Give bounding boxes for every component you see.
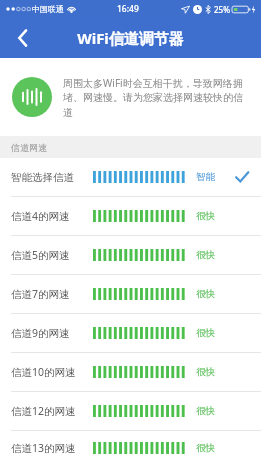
staticText: 很快 xyxy=(196,288,215,300)
button[interactable]: 信道5的网速 xyxy=(0,236,261,275)
staticText: 信道4的网速 xyxy=(11,209,70,223)
button[interactable]: 智能选择信道 xyxy=(0,158,261,197)
staticText: 很快 xyxy=(196,405,215,417)
staticText: 很快 xyxy=(196,442,215,454)
staticText: 智能 xyxy=(196,171,215,183)
staticText: 智能选择信道 xyxy=(11,171,74,184)
staticText: 很快 xyxy=(196,327,215,339)
button[interactable]: 信道9的网速 xyxy=(0,314,261,353)
staticText: 信道13的网速 xyxy=(11,441,76,455)
staticText: 25% xyxy=(214,4,230,15)
button[interactable]: 信道4的网速 xyxy=(0,197,261,236)
staticText: 16:49 xyxy=(117,3,139,15)
staticText: 中国联通 xyxy=(32,4,64,14)
staticText: WiFi信道调节器 xyxy=(77,28,184,48)
button[interactable]: 信道13的网速 xyxy=(0,431,261,464)
staticText: 很快 xyxy=(196,366,215,378)
staticText: 很快 xyxy=(196,210,215,222)
staticText: 信道12的网速 xyxy=(11,404,76,418)
staticText: 信道5的网速 xyxy=(11,248,70,262)
button[interactable]: 信道7的网速 xyxy=(0,275,261,314)
staticText: 很快 xyxy=(196,249,215,261)
button[interactable]: 信道10的网速 xyxy=(0,353,261,392)
button[interactable]: Back xyxy=(6,21,40,55)
staticText: 信道9的网速 xyxy=(11,326,70,340)
button[interactable]: 信道12的网速 xyxy=(0,392,261,431)
staticText: 信道网速 xyxy=(11,142,47,153)
staticText: 信道10的网速 xyxy=(11,365,76,379)
staticText: 信道7的网速 xyxy=(11,287,70,301)
staticText: 周围太多WiFi时会互相干扰，导致网络拥堵、网速慢。请为您家选择网速较快的信道 xyxy=(63,76,251,119)
